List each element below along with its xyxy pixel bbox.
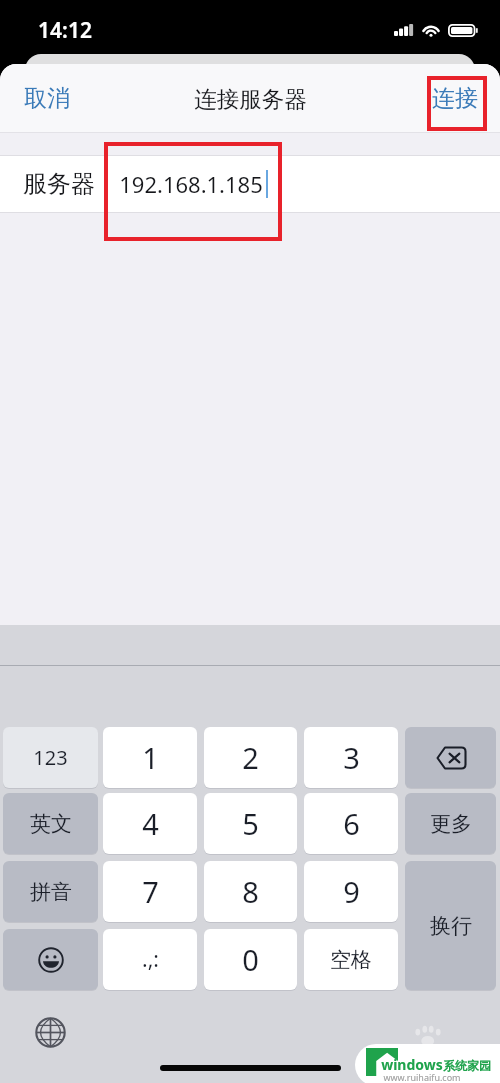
staticText: 更多 — [430, 811, 472, 837]
staticText: 8 — [242, 872, 259, 911]
staticText: 英文 — [30, 811, 72, 837]
button[interactable]: Emoji — [3, 929, 98, 990]
button[interactable]: 换行 — [405, 861, 496, 990]
button[interactable]: 空格 — [304, 929, 398, 990]
button[interactable]: 英文 — [3, 793, 98, 854]
staticText: 服务器 — [23, 169, 95, 199]
button[interactable]: Change keyboard — [34, 1016, 66, 1048]
staticText: .,: — [142, 945, 159, 974]
button[interactable]: 7 — [103, 861, 197, 922]
staticText: 5 — [242, 804, 259, 843]
staticText: www.ruihaifu.com — [383, 1071, 461, 1083]
button[interactable]: .,: — [103, 929, 197, 990]
staticText: 192.168.1.185 — [119, 169, 263, 199]
staticText: 1 — [142, 738, 159, 777]
staticText: 9 — [343, 872, 360, 911]
button[interactable]: 2 — [204, 727, 297, 788]
button[interactable]: 更多 — [405, 793, 496, 854]
button[interactable]: 9 — [304, 861, 398, 922]
staticText: 系统家园 — [443, 1058, 491, 1073]
button[interactable]: 123 — [3, 727, 98, 788]
button[interactable]: 0 — [204, 929, 297, 990]
button[interactable]: 5 — [204, 793, 297, 854]
button[interactable]: 连接 — [410, 70, 500, 127]
button[interactable]: 取消 — [0, 70, 94, 127]
button[interactable]: 3 — [304, 727, 398, 788]
button[interactable]: 4 — [103, 793, 197, 854]
staticText: 0 — [242, 940, 259, 979]
staticText: 取消 — [24, 84, 70, 113]
staticText: 123 — [33, 744, 68, 771]
staticText: 4 — [142, 804, 159, 843]
staticText: 14:12 — [38, 16, 92, 45]
staticText: 2 — [242, 738, 259, 777]
staticText: windows — [381, 1055, 443, 1074]
staticText: 7 — [142, 872, 159, 911]
button[interactable]: 8 — [204, 861, 297, 922]
button[interactable]: Backspace — [405, 727, 496, 788]
button[interactable]: 6 — [304, 793, 398, 854]
staticText: 换行 — [430, 913, 472, 939]
button[interactable]: 拼音 — [3, 861, 98, 922]
staticText: 连接服务器 — [194, 85, 307, 113]
staticText: 6 — [343, 804, 360, 843]
staticText: 拼音 — [30, 879, 72, 905]
staticText: 空格 — [330, 947, 372, 973]
staticText: 3 — [343, 738, 360, 777]
staticText: 连接 — [432, 84, 478, 113]
button[interactable]: 服务器 — [0, 155, 500, 213]
button[interactable]: 1 — [103, 727, 197, 788]
